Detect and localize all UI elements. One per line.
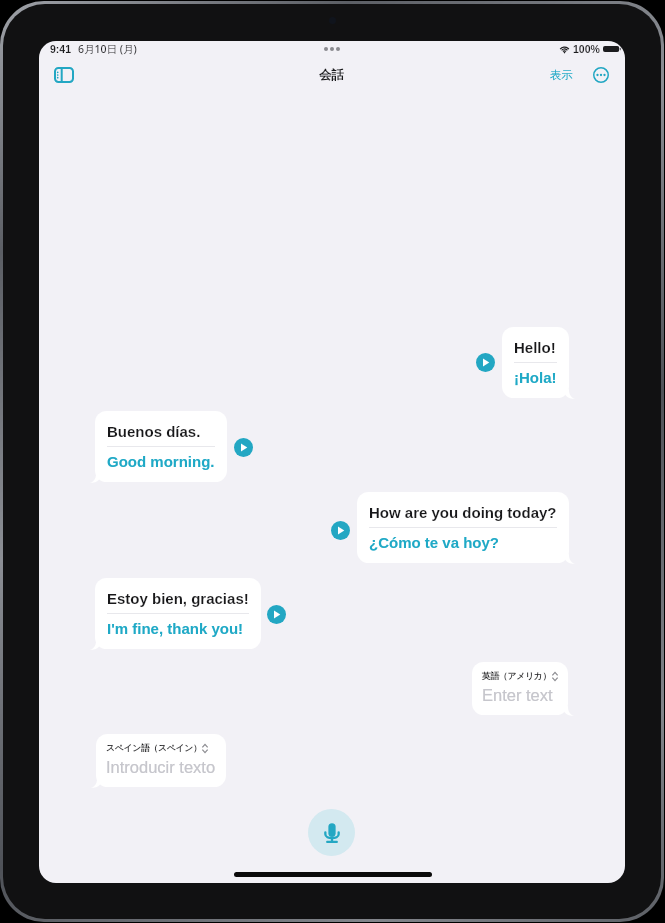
button[interactable]: Play audio [331, 521, 350, 540]
staticText: Good morning. [107, 453, 215, 470]
staticText: ¿Cómo te va hoy? [369, 534, 500, 551]
staticText: 英語（アメリカ） [482, 671, 552, 682]
staticText: 9:41 [50, 43, 72, 55]
button[interactable]: Play audio [476, 353, 495, 372]
staticText: ¡Hola! [514, 369, 557, 386]
button[interactable]: More options [589, 63, 613, 87]
button[interactable]: Estoy bien, gracias! [95, 578, 261, 649]
staticText: Enter text [482, 686, 553, 704]
button[interactable]: How are you doing today? [357, 492, 569, 563]
staticText: I'm fine, thank you! [107, 620, 244, 637]
button[interactable]: Start listening [308, 809, 355, 856]
button[interactable]: Play audio [234, 438, 253, 457]
staticText: Buenos días. [107, 423, 201, 440]
staticText: 100% [573, 43, 600, 55]
staticText: 6月10日 (月) [78, 42, 137, 56]
button[interactable]: Hello! [502, 327, 569, 398]
button[interactable]: Play audio [267, 605, 286, 624]
staticText: 表示 [550, 68, 573, 82]
button[interactable]: 表示 [544, 59, 579, 91]
button[interactable]: 英語（アメリカ） [472, 662, 568, 715]
staticText: スペイン語（スペイン） [106, 743, 202, 754]
button[interactable]: スペイン語（スペイン） [96, 734, 226, 787]
staticText: 会話 [319, 67, 344, 83]
staticText: Introducir texto [106, 758, 216, 776]
staticText: Hello! [514, 339, 556, 356]
staticText: Estoy bien, gracias! [107, 590, 249, 607]
staticText: How are you doing today? [369, 504, 557, 521]
button[interactable]: Buenos días. [95, 411, 227, 482]
button[interactable]: Show sidebar [48, 59, 80, 91]
